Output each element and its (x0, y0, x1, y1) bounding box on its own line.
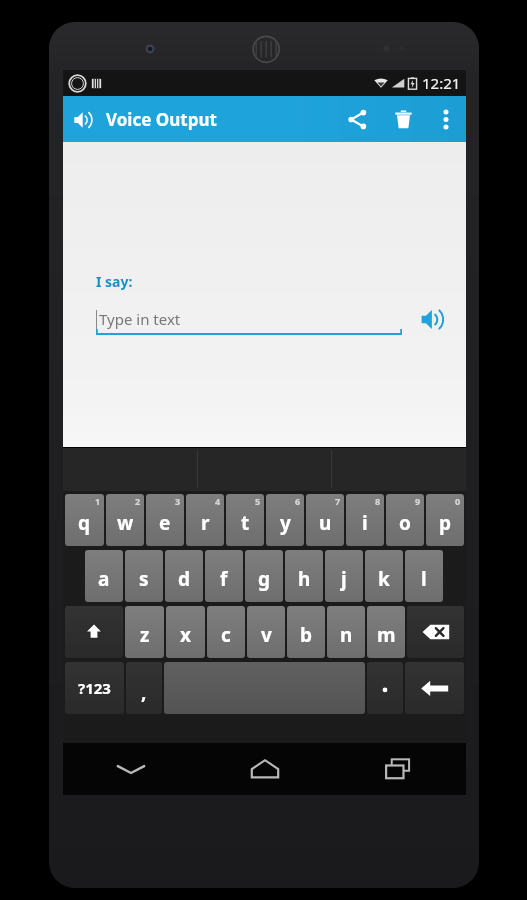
button[interactable]: q (65, 494, 104, 546)
staticText: e (159, 510, 171, 536)
staticText: Voice Output (106, 108, 217, 131)
button[interactable]: b (287, 606, 325, 658)
button[interactable]: z (125, 606, 164, 658)
staticText: o (399, 510, 411, 536)
staticText: m (377, 622, 396, 648)
staticText: a (98, 566, 110, 592)
staticText: y (280, 510, 291, 536)
staticText: v (261, 622, 272, 648)
staticText: z (140, 622, 150, 648)
button[interactable]: Share (334, 96, 380, 142)
staticText: 3 (175, 495, 181, 507)
button[interactable]: Speak text (414, 300, 452, 338)
staticText: f (220, 566, 228, 592)
button[interactable]: s (125, 550, 163, 602)
button[interactable]: n (327, 606, 365, 658)
staticText: h (298, 566, 311, 592)
staticText: b (300, 622, 313, 648)
staticText: Type in text (99, 309, 181, 329)
button[interactable]: Shift (65, 606, 123, 658)
button[interactable]: Space (164, 662, 365, 714)
staticText: x (180, 622, 191, 648)
button[interactable]: u (306, 494, 344, 546)
button[interactable]: a (85, 550, 123, 602)
button[interactable]: Voice Output (73, 108, 217, 131)
staticText: 6 (295, 495, 301, 507)
button[interactable]: d (165, 550, 203, 602)
button[interactable]: j (325, 550, 363, 602)
button[interactable]: k (365, 550, 403, 602)
staticText: t (241, 510, 250, 536)
staticText: I say: (96, 272, 133, 291)
staticText: 7 (335, 495, 341, 507)
staticText: 5 (255, 495, 261, 507)
staticText: ?123 (78, 678, 111, 698)
staticText: 9 (415, 495, 421, 507)
button[interactable]: o (386, 494, 424, 546)
button[interactable]: r (186, 494, 224, 546)
button[interactable]: Recent apps (332, 743, 466, 795)
staticText: r (201, 510, 210, 536)
button[interactable]: Enter (405, 662, 464, 714)
staticText: i (362, 510, 368, 536)
button[interactable]: y (266, 494, 304, 546)
staticText: 2 (135, 495, 141, 507)
staticText: l (421, 566, 427, 592)
button[interactable]: i (346, 494, 384, 546)
button[interactable]: Symbols (65, 662, 124, 714)
button[interactable]: Type in text (96, 302, 402, 336)
staticText: 0 (455, 495, 461, 507)
staticText: k (378, 566, 390, 592)
button[interactable]: More options (426, 96, 466, 142)
staticText: u (319, 510, 332, 536)
staticText: 1 (95, 495, 101, 507)
button[interactable]: x (166, 606, 205, 658)
button[interactable]: Home (198, 743, 332, 795)
staticText: n (340, 622, 353, 648)
button[interactable]: Period (367, 662, 403, 714)
button[interactable]: w (106, 494, 144, 546)
button[interactable]: t (226, 494, 264, 546)
button[interactable]: f (205, 550, 243, 602)
staticText: 12:21 (422, 73, 461, 93)
button[interactable]: Comma (126, 662, 162, 714)
staticText: q (78, 510, 91, 536)
staticText: c (221, 622, 231, 648)
staticText: s (139, 566, 149, 592)
button[interactable]: h (285, 550, 323, 602)
button[interactable]: e (146, 494, 184, 546)
staticText: , (141, 679, 147, 705)
button[interactable]: g (245, 550, 283, 602)
button[interactable]: Hide keyboard (63, 743, 198, 795)
staticText: 4 (215, 495, 221, 507)
button[interactable]: m (367, 606, 405, 658)
staticText: 8 (375, 495, 381, 507)
staticText: j (341, 566, 347, 592)
staticText: p (439, 510, 452, 536)
staticText: d (178, 566, 191, 592)
button[interactable]: v (247, 606, 285, 658)
button[interactable]: Backspace (407, 606, 464, 658)
button[interactable]: c (207, 606, 245, 658)
button[interactable]: Delete (380, 96, 426, 142)
staticText: w (117, 510, 134, 536)
staticText: g (258, 566, 271, 592)
button[interactable]: l (405, 550, 443, 602)
button[interactable]: p (426, 494, 464, 546)
